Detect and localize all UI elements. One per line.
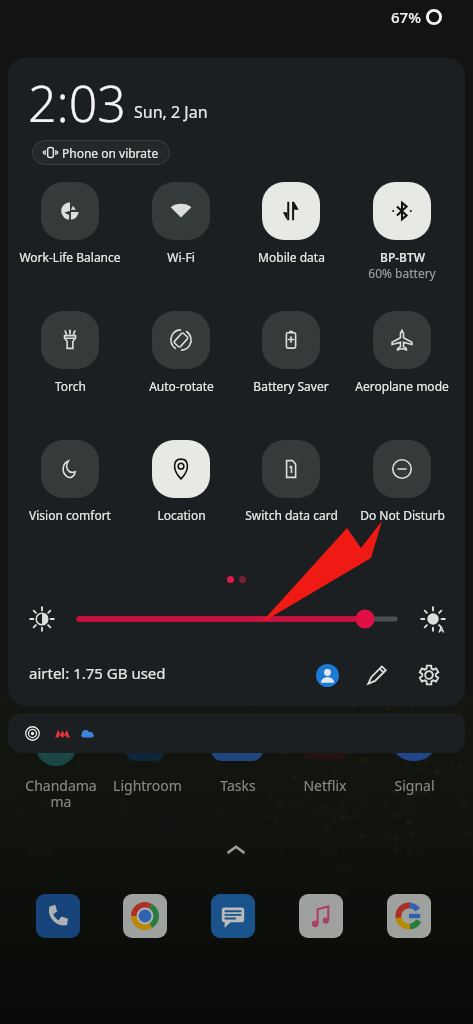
staticText: Lightroom bbox=[113, 776, 182, 795]
staticText: Aeroplane mode bbox=[355, 378, 449, 394]
button[interactable]: Notifications bbox=[8, 713, 465, 753]
staticText: Switch data card bbox=[245, 507, 338, 523]
button[interactable]: Brightness bbox=[8, 605, 465, 633]
button[interactable]: Signal bbox=[364, 776, 464, 795]
staticText: Sun, 2 Jan bbox=[134, 101, 208, 123]
button[interactable]: phone bbox=[36, 894, 80, 938]
staticText: airtel: 1.75 GB used bbox=[29, 663, 166, 683]
button[interactable]: Tasks bbox=[188, 776, 288, 795]
button[interactable]: Settings bbox=[414, 660, 444, 690]
button[interactable]: BP-BTW bbox=[347, 182, 457, 281]
button[interactable]: Battery Saver bbox=[236, 311, 346, 394]
staticText: Netflix bbox=[303, 776, 347, 795]
button[interactable]: Do Not Disturb bbox=[347, 440, 457, 523]
button[interactable]: Wi-Fi bbox=[126, 182, 236, 265]
staticText: Signal bbox=[394, 776, 435, 795]
staticText: Work-Life Balance bbox=[19, 249, 121, 265]
staticText: 67% bbox=[391, 7, 421, 27]
staticText: 2:03 bbox=[28, 69, 126, 137]
staticText: Mobile data bbox=[258, 249, 325, 265]
staticText: Phone on vibrate bbox=[62, 145, 159, 161]
button[interactable]: Netflix bbox=[275, 776, 375, 795]
button[interactable]: Aeroplane mode bbox=[347, 311, 457, 394]
button[interactable]: Vision comfort bbox=[15, 440, 125, 523]
button[interactable]: Mobile data bbox=[236, 182, 346, 265]
button[interactable]: Chandamama bbox=[11, 776, 111, 811]
button[interactable]: music bbox=[299, 894, 343, 938]
button[interactable]: Torch bbox=[15, 311, 125, 394]
button[interactable]: google bbox=[387, 894, 431, 938]
button[interactable]: Lightroom bbox=[97, 776, 197, 795]
staticText: BP-BTW bbox=[380, 249, 425, 265]
button[interactable]: messages bbox=[211, 894, 255, 938]
staticText: 60% battery bbox=[368, 265, 436, 281]
staticText: Torch bbox=[55, 378, 86, 394]
button[interactable]: Open app drawer bbox=[222, 836, 250, 864]
staticText: Battery Saver bbox=[253, 378, 329, 394]
button[interactable]: Work-Life Balance bbox=[15, 182, 125, 265]
staticText: Vision comfort bbox=[29, 507, 111, 523]
staticText: Location bbox=[157, 507, 206, 523]
staticText: Tasks bbox=[220, 776, 256, 795]
staticText: Auto-rotate bbox=[149, 378, 214, 394]
button[interactable]: Auto-rotate bbox=[126, 311, 236, 394]
button[interactable]: chrome bbox=[123, 894, 167, 938]
button[interactable]: Edit bbox=[362, 660, 392, 690]
button[interactable]: Phone on vibrate bbox=[32, 140, 170, 165]
staticText: Chandama ma bbox=[25, 776, 97, 811]
button[interactable]: Location bbox=[126, 440, 236, 523]
button[interactable]: Switch data card bbox=[236, 440, 346, 523]
button[interactable]: User account bbox=[312, 660, 342, 690]
staticText: Wi-Fi bbox=[167, 249, 195, 265]
staticText: Do Not Disturb bbox=[360, 507, 445, 523]
